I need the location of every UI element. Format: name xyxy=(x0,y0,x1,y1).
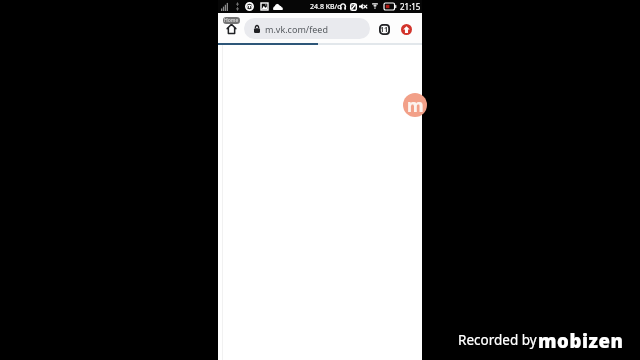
staticText: 24.8 KB/c xyxy=(310,2,341,12)
button[interactable]: Opera menu xyxy=(395,18,417,40)
button[interactable]: m.vk.com/feed xyxy=(244,18,370,39)
button[interactable]: Tabs xyxy=(373,18,395,40)
staticText: m.vk.com/feed xyxy=(265,23,328,35)
staticText: m xyxy=(407,94,424,117)
staticText: Recorded by xyxy=(458,331,537,349)
staticText: mobizen xyxy=(538,328,624,353)
button[interactable]: Home xyxy=(220,17,242,39)
staticText: Home xyxy=(224,17,239,24)
staticText: 21:15 xyxy=(400,1,421,12)
staticText: 11 xyxy=(380,25,389,35)
